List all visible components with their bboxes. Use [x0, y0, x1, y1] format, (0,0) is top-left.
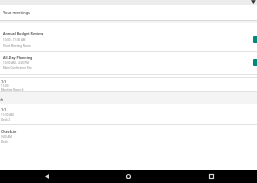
staticText: nch — [0, 97, 4, 102]
staticText: Desk 2 — [1, 118, 11, 122]
staticText: 1:1 — [1, 107, 7, 112]
staticText: All-Day Planning — [3, 55, 33, 60]
staticText: 10:30 - 11:30 AM — [3, 38, 26, 42]
button[interactable]: Join meeting — [253, 59, 257, 66]
staticText: Check-in — [1, 129, 17, 134]
button[interactable]: Recent apps — [197, 170, 225, 183]
button[interactable]: Join meeting — [253, 36, 257, 43]
staticText: Meeting Room 4 — [1, 88, 24, 91]
button[interactable]: Back — [33, 170, 61, 183]
staticText: 10:30 AM - 4:30 PM — [3, 61, 29, 65]
staticText: 9:00 AM — [1, 135, 12, 139]
button[interactable]: Annual Budget Review — [0, 23, 257, 51]
staticText: Desk — [1, 140, 8, 143]
button[interactable]: 1:1 — [0, 104, 257, 124]
staticText: 11:00 — [1, 84, 9, 88]
button[interactable]: 1:1 — [0, 78, 257, 91]
button[interactable]: Home — [114, 170, 142, 183]
staticText: 1:1 — [1, 79, 7, 84]
staticText: Main Conference Rm — [3, 66, 32, 70]
staticText: Annual Budget Review — [3, 31, 44, 36]
staticText: Third Meeting Room — [3, 44, 31, 48]
staticText: 11:30 AM — [1, 113, 14, 117]
button[interactable]: Check-in — [0, 125, 257, 143]
staticText: Your meetings — [3, 10, 30, 15]
button[interactable]: All-Day Planning — [0, 52, 257, 74]
